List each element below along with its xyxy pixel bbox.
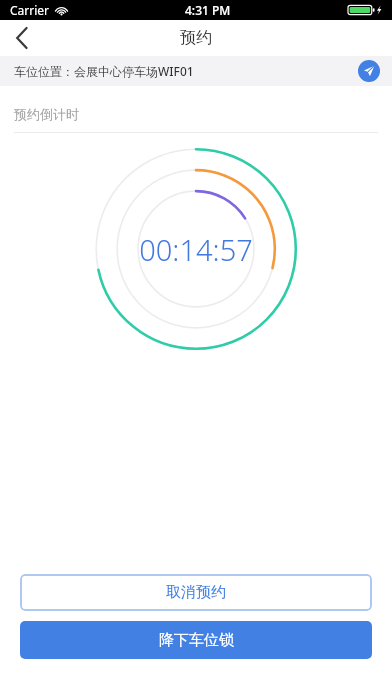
button[interactable]: 降下车位锁	[20, 621, 372, 659]
staticText: 预约	[180, 28, 212, 48]
button[interactable]: Back	[0, 20, 44, 56]
staticText: 取消预约	[166, 583, 226, 602]
staticText: 车位位置：会展中心停车场WIF01	[14, 63, 194, 79]
button[interactable]: 取消预约	[20, 574, 372, 611]
staticText: Carrier	[10, 2, 50, 18]
button[interactable]: 车位位置：会展中心停车场WIF01	[0, 56, 392, 86]
staticText: 预约倒计时	[14, 106, 79, 122]
staticText: 4:31 PM	[185, 2, 231, 18]
staticText: 降下车位锁	[159, 631, 234, 650]
button[interactable]: Navigate	[358, 60, 380, 82]
staticText: 00:14:57	[139, 230, 253, 269]
